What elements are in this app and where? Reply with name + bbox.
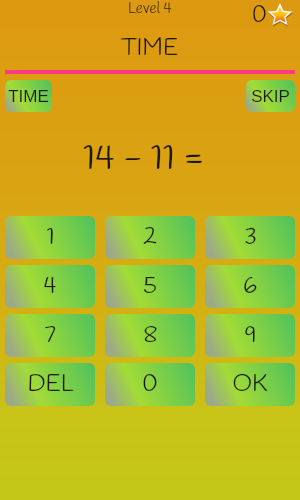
staticText: 14 - 11 = bbox=[83, 135, 205, 183]
staticText: 2 bbox=[143, 222, 157, 254]
staticText: OK bbox=[232, 369, 268, 401]
staticText: 1 bbox=[46, 222, 55, 254]
button[interactable]: 7 bbox=[5, 314, 95, 357]
staticText: 6 bbox=[243, 271, 257, 303]
staticText: 4 bbox=[43, 271, 57, 303]
staticText: 0 bbox=[252, 1, 267, 32]
button[interactable]: OK bbox=[205, 363, 295, 406]
other: Stars collected bbox=[267, 2, 293, 27]
button[interactable]: 8 bbox=[105, 314, 195, 357]
staticText: 3 bbox=[244, 222, 257, 254]
staticText: TIME bbox=[121, 33, 179, 65]
button[interactable]: SKIP bbox=[246, 80, 295, 112]
button[interactable]: 4 bbox=[5, 265, 95, 308]
button[interactable]: 6 bbox=[205, 265, 295, 308]
staticText: DEL bbox=[27, 369, 74, 401]
staticText: 7 bbox=[44, 320, 56, 352]
staticText: SKIP bbox=[251, 87, 290, 106]
staticText: TIME bbox=[8, 87, 49, 106]
button[interactable]: TIME bbox=[5, 80, 52, 112]
button[interactable]: 5 bbox=[105, 265, 195, 308]
button[interactable]: 3 bbox=[205, 216, 295, 259]
staticText: Level 4 bbox=[128, 0, 172, 19]
staticText: 8 bbox=[143, 320, 158, 352]
button[interactable]: DEL bbox=[5, 363, 95, 406]
button[interactable]: 1 bbox=[5, 216, 95, 259]
button[interactable]: 9 bbox=[205, 314, 295, 357]
staticText: 9 bbox=[244, 320, 257, 352]
staticText: 5 bbox=[143, 271, 157, 303]
staticText: 0 bbox=[142, 369, 158, 401]
button[interactable]: 2 bbox=[105, 216, 195, 259]
button[interactable]: 0 bbox=[105, 363, 195, 406]
